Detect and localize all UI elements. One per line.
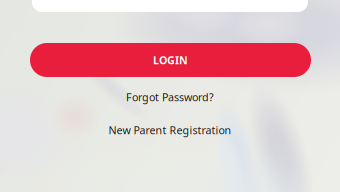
button[interactable]: New Parent Registration [0, 122, 340, 138]
staticText: New Parent Registration [108, 123, 231, 137]
button[interactable]: LOGIN [30, 43, 311, 77]
staticText: Forgot Password? [126, 90, 214, 104]
button[interactable]: Forgot Password? [0, 89, 340, 105]
staticText: LOGIN [153, 53, 188, 67]
